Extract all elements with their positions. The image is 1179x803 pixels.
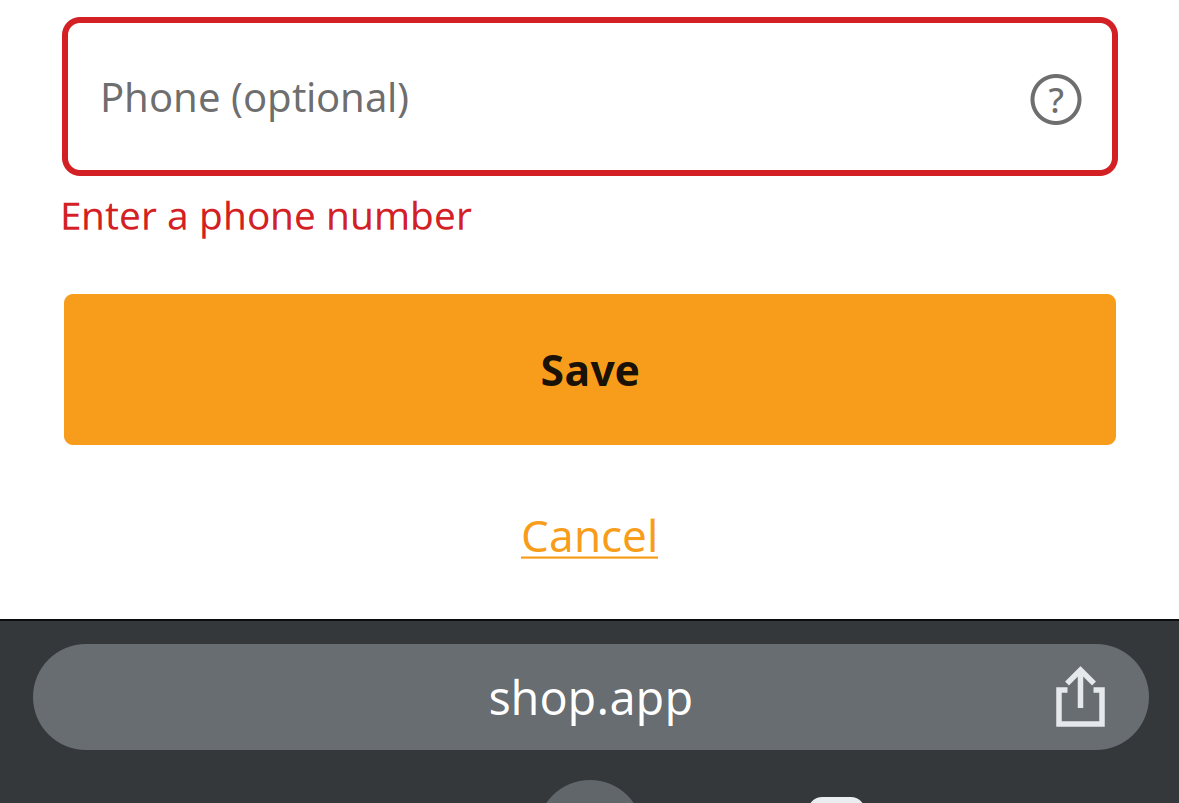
staticText: ? [1048,76,1063,122]
staticText: Cancel [521,506,658,564]
button[interactable]: Share [1049,667,1112,729]
button[interactable]: Save [64,294,1116,445]
button[interactable]: Cancel [64,505,1115,565]
button[interactable]: shop.app [33,644,1149,750]
staticText: shop.app [488,666,693,728]
staticText: Save [540,341,639,398]
button[interactable]: Phone (optional) [62,17,1118,176]
staticText: Enter a phone number [60,189,472,240]
staticText: Phone (optional) [100,70,409,123]
